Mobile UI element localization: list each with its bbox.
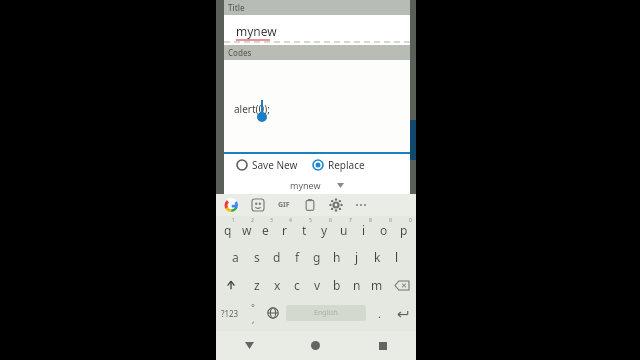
button[interactable]: w	[237, 216, 256, 243]
staticText: n	[353, 277, 361, 293]
button[interactable]: q	[218, 216, 237, 243]
button[interactable]: d	[267, 243, 287, 271]
staticText: b	[333, 277, 341, 293]
staticText: l	[395, 249, 399, 265]
staticText: 8	[369, 217, 372, 224]
button[interactable]: Save New	[234, 156, 300, 174]
staticText: 0	[409, 217, 412, 224]
button[interactable]: c	[287, 271, 307, 299]
staticText: 3	[270, 217, 273, 224]
button[interactable]: ?123	[216, 299, 243, 327]
staticText: English	[314, 308, 338, 318]
staticText: u	[340, 222, 348, 238]
staticText: k	[374, 249, 381, 265]
button[interactable]: More options	[356, 204, 366, 206]
staticText: a	[232, 249, 239, 265]
staticText: ,	[252, 313, 255, 325]
staticText: j	[355, 249, 359, 265]
staticText: 9	[389, 217, 392, 224]
staticText: 6	[329, 217, 332, 224]
button[interactable]: p	[394, 216, 414, 243]
button[interactable]: x	[267, 271, 287, 299]
button[interactable]: Change language	[263, 299, 283, 327]
button[interactable]: o	[374, 216, 394, 243]
button[interactable]: a	[225, 243, 246, 271]
other: Backspace	[394, 280, 410, 291]
staticText: GIF	[278, 200, 290, 210]
button[interactable]: b	[327, 271, 347, 299]
button[interactable]: m	[367, 271, 387, 299]
button[interactable]: °	[243, 299, 263, 327]
button[interactable]: alert(0);	[224, 60, 410, 154]
button[interactable]: Clipboard	[304, 199, 316, 211]
staticText: mynew	[290, 179, 321, 191]
button[interactable]: Stickers	[252, 199, 264, 211]
staticText: q	[224, 222, 232, 238]
button[interactable]: r	[275, 216, 294, 243]
button[interactable]: h	[327, 243, 347, 271]
button[interactable]: k	[367, 243, 387, 271]
staticText: m	[371, 277, 383, 293]
staticText: mynew	[236, 23, 277, 39]
button[interactable]: Shift	[216, 271, 246, 299]
other: Enter	[396, 307, 409, 320]
button[interactable]: g	[307, 243, 327, 271]
button[interactable]: Space	[286, 305, 366, 321]
button[interactable]: Back	[216, 331, 282, 360]
staticText: e	[262, 222, 269, 238]
staticText: 7	[349, 217, 352, 224]
button[interactable]: mynew	[224, 15, 410, 45]
button[interactable]: Home	[282, 331, 349, 360]
button[interactable]: t	[294, 216, 314, 243]
staticText: d	[273, 249, 281, 265]
button[interactable]: l	[387, 243, 407, 271]
staticText: w	[242, 222, 252, 238]
button[interactable]: Enter	[389, 299, 416, 327]
staticText: 1	[232, 217, 235, 224]
button[interactable]: j	[347, 243, 367, 271]
button[interactable]: z	[246, 271, 267, 299]
staticText: Replace	[328, 158, 365, 172]
staticText: f	[295, 249, 300, 265]
button[interactable]: f	[287, 243, 307, 271]
button[interactable]: Backspace	[387, 271, 416, 299]
button[interactable]: Recents	[349, 331, 416, 360]
staticText: alert(0);	[234, 102, 270, 116]
button[interactable]: e	[256, 216, 275, 243]
staticText: Codes	[228, 47, 252, 58]
button[interactable]: u	[334, 216, 354, 243]
staticText: x	[274, 277, 281, 293]
button[interactable]: Replace	[310, 156, 367, 174]
button[interactable]: i	[354, 216, 374, 243]
staticText: 2	[251, 217, 254, 224]
staticText: s	[254, 249, 260, 265]
staticText: v	[314, 277, 321, 293]
button[interactable]: .	[369, 299, 389, 327]
staticText: z	[254, 277, 260, 293]
staticText: y	[321, 222, 328, 238]
staticText: c	[294, 277, 300, 293]
staticText: t	[302, 222, 307, 238]
staticText: 4	[289, 217, 292, 224]
button[interactable]: mynew	[290, 179, 344, 191]
button[interactable]: s	[246, 243, 267, 271]
staticText: Save New	[252, 158, 298, 172]
staticText: h	[333, 249, 341, 265]
other: Change language	[267, 307, 279, 319]
button[interactable]: y	[314, 216, 334, 243]
button[interactable]: Google	[224, 198, 238, 212]
button[interactable]: n	[347, 271, 367, 299]
staticText: i	[362, 222, 366, 238]
button[interactable]: v	[307, 271, 327, 299]
staticText: .	[378, 306, 381, 321]
button[interactable]: GIF	[278, 200, 290, 210]
staticText: Title	[228, 2, 245, 13]
staticText: ?123	[221, 308, 239, 319]
staticText: p	[400, 222, 408, 238]
button[interactable]: Settings	[330, 199, 342, 211]
staticText: g	[313, 249, 321, 265]
staticText: 5	[309, 217, 312, 224]
staticText: r	[282, 222, 287, 238]
staticText: o	[380, 222, 388, 238]
staticText: °	[251, 301, 255, 313]
